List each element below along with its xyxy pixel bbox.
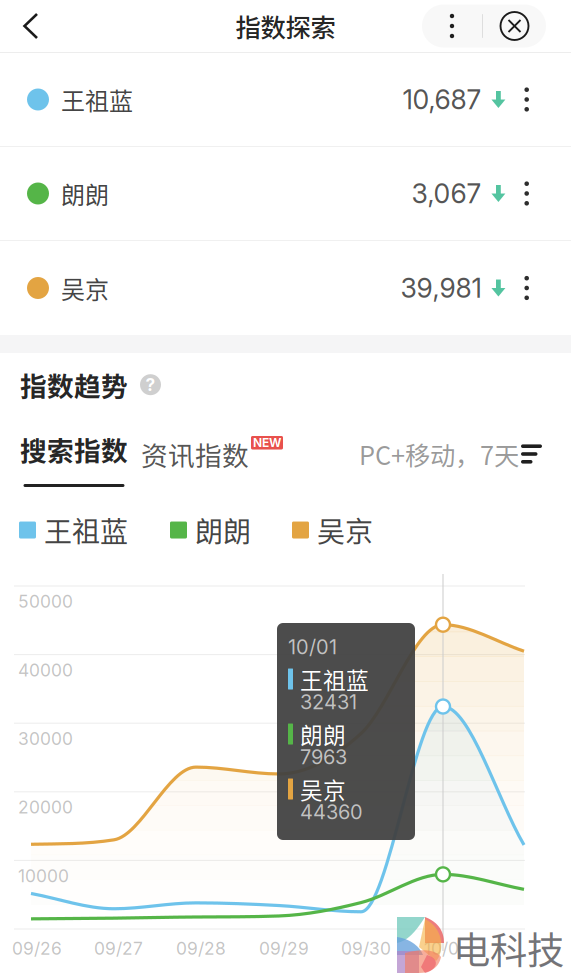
button[interactable]: 搜索指数 (18, 404, 130, 487)
button[interactable]: More options (422, 4, 482, 47)
staticText: 09/30 (341, 938, 391, 959)
staticText: 王祖蓝 (61, 82, 133, 117)
button[interactable]: Back (0, 0, 62, 52)
staticText: 资讯指数 (141, 435, 249, 473)
staticText: 30000 (18, 728, 73, 749)
staticText: 朗朗 (61, 176, 109, 211)
staticText: PC+移动，7天 (359, 436, 519, 472)
staticText: 09/29 (259, 938, 309, 959)
staticText: 朗朗 (195, 510, 251, 550)
staticText: 09/26 (12, 938, 62, 959)
staticText: 40000 (18, 660, 73, 681)
button[interactable]: 吴京 (0, 241, 571, 335)
staticText: 10000 (18, 865, 69, 886)
staticText: 指数趋势 (20, 365, 128, 404)
staticText: 10,687 (402, 83, 481, 116)
staticText: 搜索指数 (20, 430, 128, 468)
staticText: 09/28 (176, 938, 226, 959)
staticText: 指数探索 (235, 8, 335, 44)
button[interactable]: 资讯指数 (139, 439, 251, 469)
button[interactable]: PC+移动，7天 (359, 439, 571, 469)
staticText: ? (145, 374, 155, 395)
staticText: 32431 (300, 690, 357, 714)
staticText: 吴京 (300, 773, 346, 805)
button[interactable]: Close (483, 4, 546, 47)
staticText: 电科技 (453, 921, 564, 975)
staticText: 50000 (18, 591, 73, 612)
staticText: 3,067 (411, 177, 481, 210)
staticText: 10/0 (424, 938, 459, 959)
staticText: 20000 (18, 797, 73, 818)
staticText: 王祖蓝 (44, 510, 128, 550)
staticText: NEW (253, 435, 281, 450)
staticText: 朗朗 (300, 718, 346, 750)
button[interactable]: 王祖蓝 (0, 53, 571, 146)
button[interactable]: 朗朗 (0, 147, 571, 240)
staticText: 吴京 (61, 271, 109, 305)
staticText: 09/27 (94, 938, 143, 959)
staticText: 10/01 (288, 635, 337, 659)
staticText: 吴京 (317, 510, 373, 550)
staticText: 7963 (300, 745, 347, 769)
staticText: 39,981 (400, 272, 481, 304)
staticText: 44360 (300, 800, 363, 824)
staticText: 王祖蓝 (300, 663, 369, 695)
